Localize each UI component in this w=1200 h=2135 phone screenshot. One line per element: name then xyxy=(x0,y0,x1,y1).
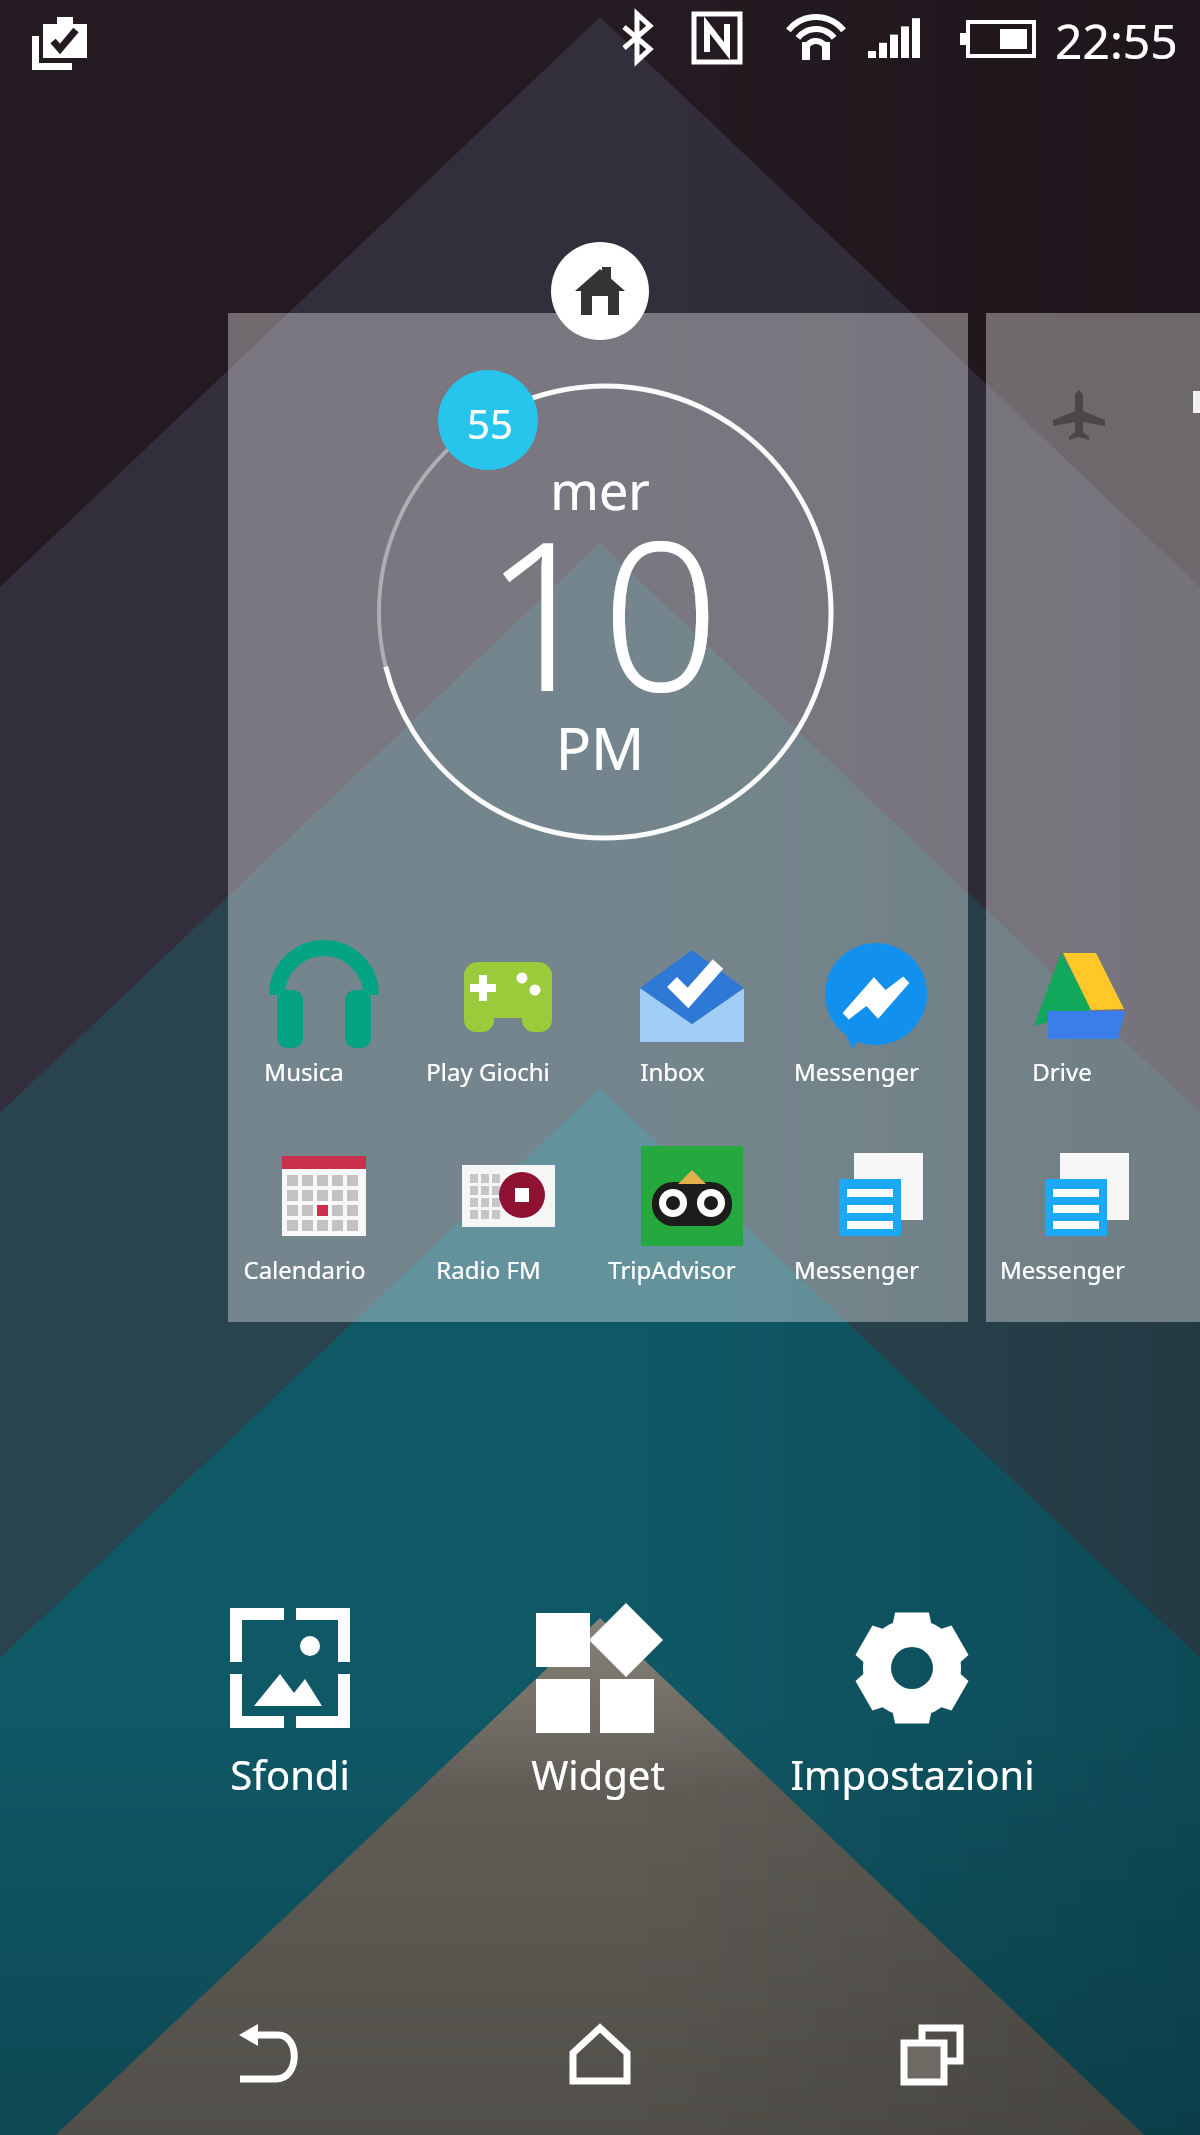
staticText: Musica xyxy=(264,1055,344,1088)
button[interactable]: Back xyxy=(213,2000,323,2110)
button[interactable]: Home screen xyxy=(551,242,649,340)
staticText: Radio FM xyxy=(436,1253,541,1286)
button[interactable]: Messenger xyxy=(990,1141,1174,1301)
button[interactable]: Drive xyxy=(986,313,1200,1322)
staticText: Calendario xyxy=(243,1253,366,1286)
staticText: 10 xyxy=(483,470,720,752)
staticText: 22:55 xyxy=(1055,8,1178,72)
staticText: Messenger xyxy=(794,1253,919,1286)
staticText: PM xyxy=(555,707,645,787)
staticText: mer xyxy=(550,454,650,525)
button[interactable]: Messenger xyxy=(784,1141,968,1301)
button[interactable]: Play Giochi xyxy=(416,943,600,1103)
staticText: Play Giochi xyxy=(426,1055,550,1088)
button[interactable]: Calendario xyxy=(232,1141,416,1301)
button[interactable]: Musica xyxy=(232,943,416,1103)
staticText: Widget xyxy=(531,1747,665,1801)
button[interactable]: Drive xyxy=(990,943,1174,1103)
staticText: 55 xyxy=(467,396,513,450)
staticText: Inbox xyxy=(640,1055,705,1088)
staticText: TripAdvisor xyxy=(608,1253,736,1286)
button[interactable]: Sfondi xyxy=(130,1588,450,1808)
button[interactable]: Recents xyxy=(877,2000,987,2110)
button[interactable]: TripAdvisor xyxy=(600,1141,784,1301)
staticText: Drive xyxy=(1032,1055,1092,1088)
button[interactable]: Radio FM xyxy=(416,1141,600,1301)
button[interactable]: Inbox xyxy=(600,943,784,1103)
button[interactable]: Home xyxy=(545,2000,655,2110)
staticText: Sfondi xyxy=(230,1747,350,1801)
staticText: Messenger xyxy=(1000,1253,1125,1286)
button[interactable]: Impostazioni xyxy=(752,1588,1072,1808)
staticText: Impostazioni xyxy=(790,1747,1035,1801)
button[interactable]: Messenger xyxy=(784,943,968,1103)
button[interactable]: 55 xyxy=(228,313,968,1322)
staticText: Messenger xyxy=(794,1055,919,1088)
button[interactable]: Widget xyxy=(438,1588,758,1808)
